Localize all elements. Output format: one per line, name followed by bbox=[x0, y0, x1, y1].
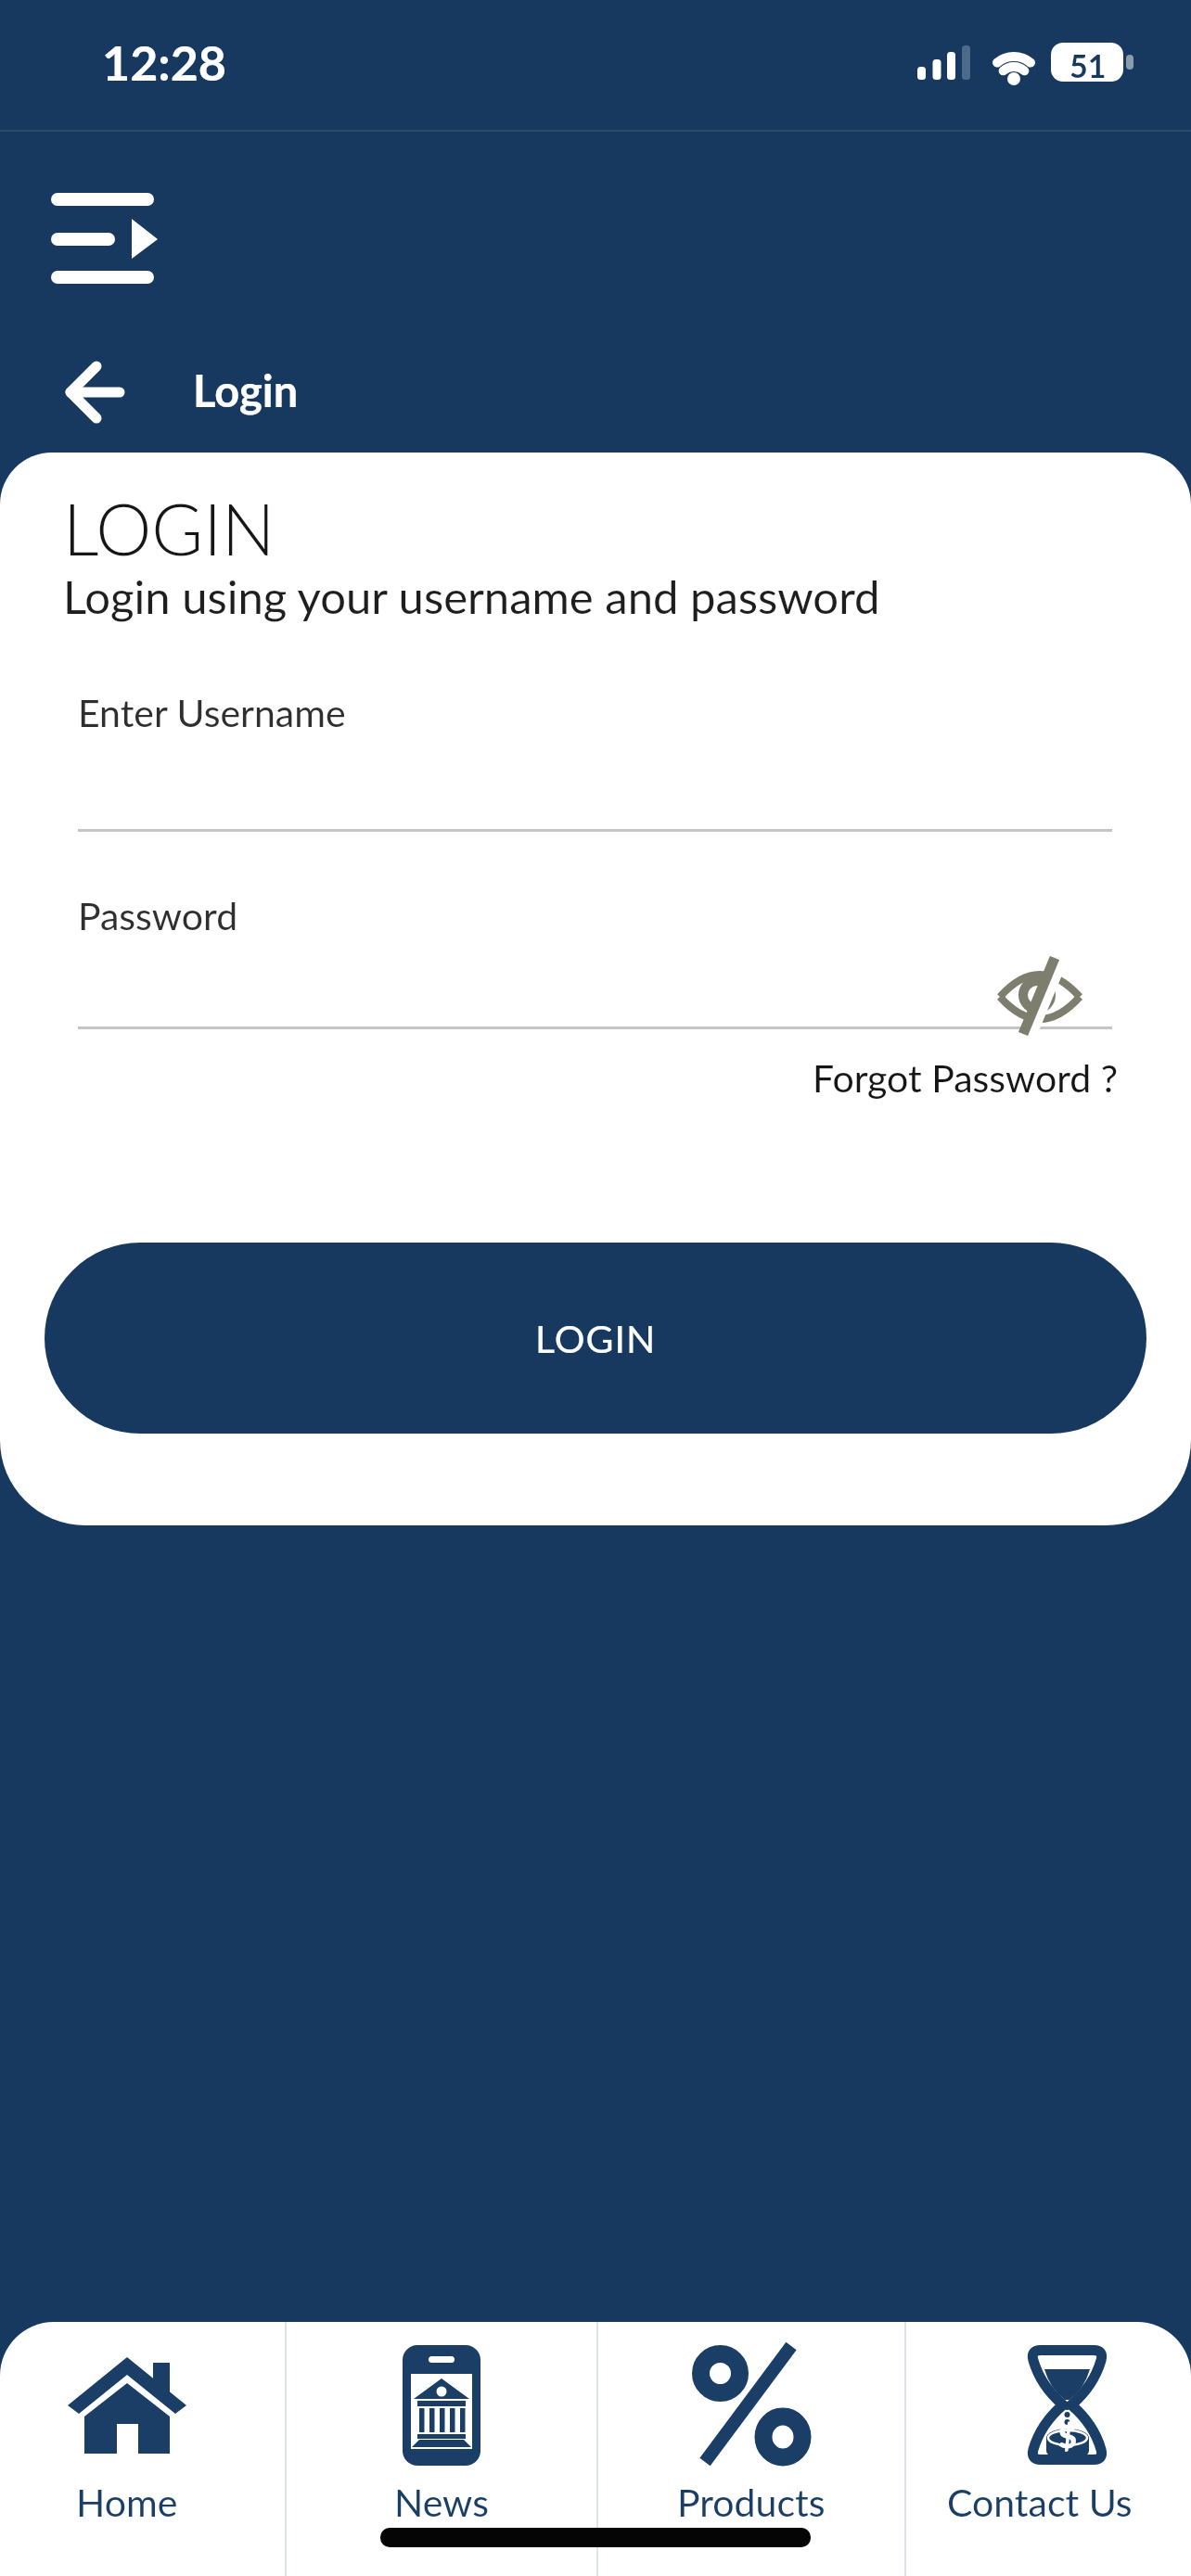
staticText: 51 bbox=[1069, 46, 1107, 84]
staticText: News bbox=[394, 2480, 489, 2525]
staticText: Login bbox=[193, 364, 299, 416]
button[interactable] bbox=[42, 184, 164, 291]
button[interactable]: News bbox=[287, 2322, 596, 2576]
button[interactable]: $ bbox=[906, 2322, 1191, 2576]
staticText: Contact Us bbox=[947, 2480, 1133, 2525]
staticText: LOGIN bbox=[535, 1316, 657, 1361]
staticText: Enter Username bbox=[78, 690, 346, 735]
staticText: Products bbox=[677, 2480, 826, 2525]
staticText: $ bbox=[1058, 2417, 1077, 2455]
staticText: Login using your username and password bbox=[63, 569, 880, 624]
button[interactable]: Products bbox=[598, 2322, 904, 2576]
button[interactable]: Home bbox=[0, 2322, 285, 2576]
button[interactable]: LOGIN bbox=[45, 1243, 1146, 1434]
staticText: Password bbox=[78, 893, 238, 938]
staticText: 12:28 bbox=[102, 33, 227, 91]
staticText: Home bbox=[76, 2480, 178, 2525]
button[interactable] bbox=[54, 352, 143, 436]
button[interactable] bbox=[998, 962, 1082, 1030]
staticText: LOGIN bbox=[63, 486, 275, 570]
button[interactable]: Forgot Password ? bbox=[813, 1055, 1119, 1101]
